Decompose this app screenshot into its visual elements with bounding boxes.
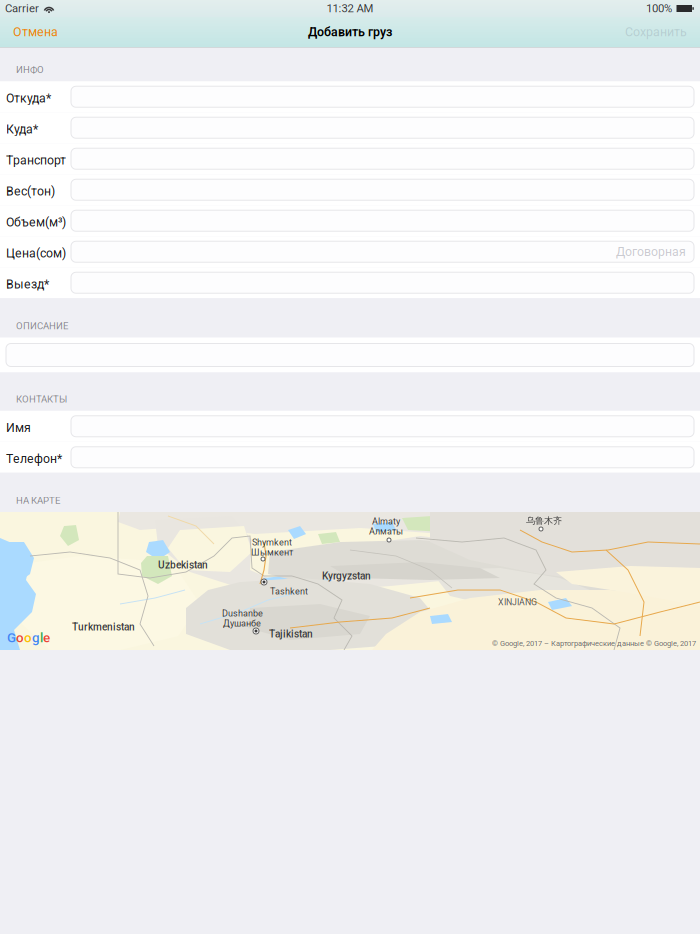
staticText: Kyrgyzstan	[322, 570, 371, 582]
staticText: Куда*	[6, 122, 38, 136]
staticText: 11:32 AM	[326, 2, 373, 15]
staticText: Объем(м³)	[6, 215, 66, 229]
staticText: Откуда*	[6, 91, 51, 105]
staticText: Shymkent	[252, 537, 292, 548]
staticText: Имя	[6, 421, 31, 435]
staticText: o	[16, 630, 24, 646]
staticText: Tashkent	[270, 586, 308, 597]
staticText: Алматы	[369, 526, 403, 537]
staticText: 100%	[646, 2, 672, 15]
staticText: Добавить груз	[308, 25, 392, 39]
staticText: Вес(тон)	[6, 184, 55, 198]
staticText: Almaty	[372, 516, 400, 527]
button[interactable]: Отмена	[0, 16, 71, 47]
staticText: e	[43, 630, 50, 646]
staticText: Tajikistan	[269, 628, 313, 640]
staticText: НА КАРТЕ	[16, 495, 60, 506]
staticText: l	[40, 630, 43, 646]
staticText: Uzbekistan	[158, 559, 208, 571]
staticText: XINJIANG	[498, 597, 537, 607]
staticText: Сохранить	[625, 25, 687, 39]
staticText: g	[32, 630, 40, 646]
staticText: o	[24, 630, 32, 646]
staticText: Dushanbe	[222, 608, 263, 619]
staticText: Выезд*	[6, 277, 49, 291]
staticText: Шымкент	[251, 547, 293, 558]
staticText: ИНФО	[16, 64, 44, 75]
staticText: ОПИСАНИЕ	[16, 320, 68, 332]
staticText: Цена(сом)	[6, 246, 66, 260]
staticText: Отмена	[13, 25, 58, 39]
staticText: 乌鲁木齐	[526, 515, 562, 526]
button[interactable]: Сохранить	[612, 16, 700, 47]
staticText: © Google, 2017 – Картографические данные…	[492, 639, 696, 648]
staticText: Транспорт	[6, 153, 66, 167]
staticText: Carrier	[5, 2, 39, 15]
staticText: Телефон*	[6, 452, 62, 466]
staticText: G	[7, 630, 16, 646]
staticText: КОНТАКТЫ	[16, 393, 67, 405]
staticText: Turkmenistan	[72, 621, 135, 633]
staticText: Душанбе	[223, 618, 261, 629]
staticText: Договорная	[616, 245, 686, 259]
